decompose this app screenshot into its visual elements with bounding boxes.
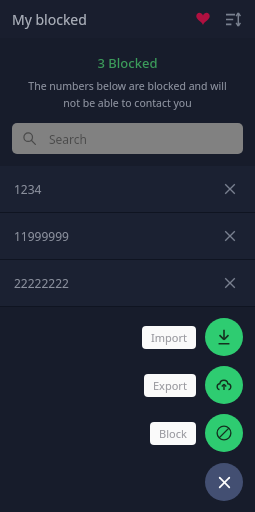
staticText: Import bbox=[151, 330, 187, 345]
staticText: The numbers below are blocked and will n… bbox=[20, 79, 235, 110]
button[interactable]: Block bbox=[150, 422, 196, 445]
button[interactable]: Export bbox=[144, 374, 196, 397]
staticText: My blocked bbox=[12, 10, 87, 29]
staticText: 1234 bbox=[14, 181, 217, 197]
staticText: 3 Blocked bbox=[0, 54, 255, 72]
button[interactable]: 11999999 bbox=[0, 213, 255, 259]
button[interactable]: Favorites bbox=[189, 5, 217, 33]
button[interactable]: 22222222 bbox=[0, 260, 255, 306]
button[interactable]: 1234 bbox=[0, 166, 255, 212]
staticText: Export bbox=[153, 378, 187, 393]
button[interactable]: Sort bbox=[219, 5, 247, 33]
button[interactable]: Remove 11999999 bbox=[217, 223, 243, 249]
button[interactable]: Import bbox=[142, 326, 196, 349]
button[interactable]: Export bbox=[205, 366, 243, 404]
staticText: Block bbox=[159, 426, 187, 441]
button[interactable]: Remove 1234 bbox=[217, 176, 243, 202]
staticText: 11999999 bbox=[14, 228, 217, 244]
button[interactable]: Search bbox=[12, 123, 243, 154]
staticText: 22222222 bbox=[14, 275, 217, 291]
staticText: Search bbox=[49, 131, 87, 147]
button[interactable]: Block bbox=[205, 414, 243, 452]
button[interactable]: Import bbox=[205, 318, 243, 356]
button[interactable]: Close menu bbox=[205, 463, 243, 501]
button[interactable]: Remove 22222222 bbox=[217, 270, 243, 296]
